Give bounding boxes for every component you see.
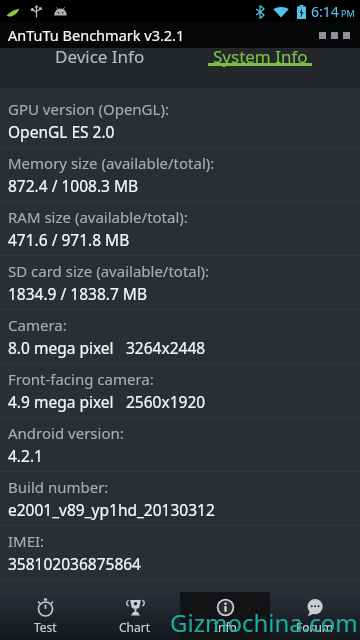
button[interactable]: IMEI:	[0, 526, 360, 579]
button[interactable]: Test	[0, 592, 90, 640]
staticText: System Info	[213, 45, 308, 68]
staticText: e2001_v89_yp1hd_20130312	[8, 499, 215, 520]
button[interactable]: RAM size (available/total):	[0, 202, 360, 255]
button[interactable]: Device Info	[20, 48, 180, 71]
button[interactable]: GPU version (OpenGL):	[0, 94, 360, 147]
button[interactable]: More options	[309, 28, 360, 43]
staticText: AnTuTu Benchmark v3.2.1	[8, 25, 185, 45]
staticText: 3264x2448	[126, 337, 206, 358]
staticText: Front-facing camera:	[8, 369, 154, 389]
button[interactable]: Chart	[90, 592, 180, 640]
button[interactable]: SD card size (available/total):	[0, 256, 360, 309]
button[interactable]: Camera:	[0, 310, 360, 363]
staticText: SD card size (available/total):	[8, 261, 210, 281]
staticText: OpenGL ES 2.0	[8, 121, 115, 142]
staticText: Info	[214, 619, 237, 635]
button[interactable]: Android version:	[0, 418, 360, 471]
button[interactable]: Forum	[270, 592, 360, 640]
staticText: 4.2.1	[8, 445, 43, 466]
staticText: Gizmochina.com	[170, 606, 358, 639]
button[interactable]: Memory size (available/total):	[0, 148, 360, 201]
staticText: 358102036875864	[8, 553, 141, 574]
staticText: Device Info	[55, 45, 145, 68]
staticText: GPU version (OpenGL):	[8, 99, 169, 119]
staticText: 2560x1920	[126, 391, 206, 412]
staticText: Build number:	[8, 477, 109, 497]
staticText: 8.0 mega pixel	[8, 337, 114, 358]
button[interactable]: Info	[180, 592, 270, 640]
button[interactable]: Build number:	[0, 472, 360, 525]
staticText: 4.9 mega pixel	[8, 391, 114, 412]
staticText: PM	[341, 7, 355, 19]
staticText: 6:14	[311, 2, 339, 21]
staticText: Chart	[119, 619, 151, 635]
staticText: 872.4 / 1008.3 MB	[8, 175, 139, 196]
staticText: 471.6 / 971.8 MB	[8, 229, 130, 250]
button[interactable]: Front-facing camera:	[0, 364, 360, 417]
staticText: 1834.9 / 1838.7 MB	[8, 283, 147, 304]
staticText: Forum	[296, 619, 334, 635]
button[interactable]: System Info	[180, 48, 340, 71]
staticText: RAM size (available/total):	[8, 207, 188, 227]
staticText: IMEI:	[8, 531, 45, 551]
staticText: Test	[34, 619, 57, 635]
staticText: Android version:	[8, 423, 124, 443]
staticText: Memory size (available/total):	[8, 153, 215, 173]
staticText: Camera:	[8, 315, 67, 335]
